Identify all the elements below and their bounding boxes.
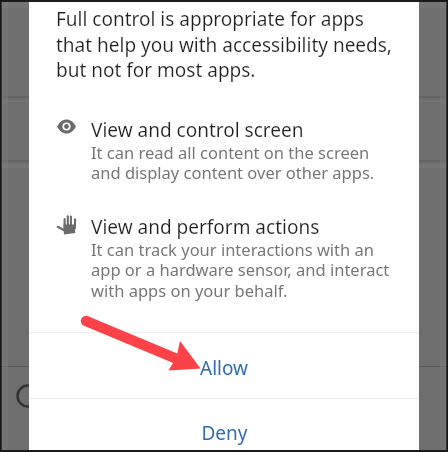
staticText: It can track your interactions with an a… — [91, 238, 397, 302]
staticText: View and perform actions — [91, 214, 320, 240]
button[interactable]: Allow — [29, 333, 419, 398]
staticText: Full control is appropriate for apps tha… — [56, 6, 402, 82]
staticText: Allow — [200, 355, 248, 381]
button[interactable]: Deny — [29, 399, 419, 452]
staticText: View and control screen — [91, 117, 304, 143]
staticText: Deny — [201, 420, 248, 446]
staticText: It can read all content on the screen an… — [91, 141, 397, 184]
